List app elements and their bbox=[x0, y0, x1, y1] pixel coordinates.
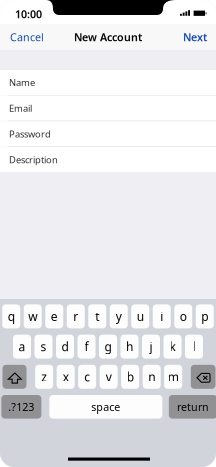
button[interactable]: l bbox=[185, 335, 203, 359]
staticText: k bbox=[169, 339, 175, 354]
button[interactable]: x bbox=[57, 365, 75, 389]
button[interactable]: m bbox=[164, 365, 182, 389]
button[interactable]: k bbox=[163, 335, 181, 359]
button[interactable]: space bbox=[49, 395, 162, 419]
staticText: v bbox=[106, 369, 112, 385]
button[interactable]: u bbox=[131, 304, 149, 328]
staticText: d bbox=[61, 339, 68, 354]
staticText: Cancel bbox=[10, 30, 44, 44]
button[interactable]: j bbox=[142, 335, 160, 359]
staticText: Description bbox=[9, 153, 58, 166]
staticText: e bbox=[51, 308, 58, 324]
button[interactable]: t bbox=[88, 304, 106, 328]
staticText: 10:00 bbox=[15, 7, 42, 21]
staticText: Password bbox=[9, 128, 51, 140]
staticText: n bbox=[148, 369, 155, 385]
staticText: m bbox=[168, 369, 179, 385]
staticText: i bbox=[160, 308, 163, 324]
staticText: b bbox=[127, 369, 134, 385]
button[interactable]: p bbox=[196, 304, 214, 328]
staticText: x bbox=[63, 369, 69, 385]
button[interactable]: q bbox=[2, 304, 20, 328]
button[interactable]: Password bbox=[0, 121, 216, 146]
button[interactable]: Shift bbox=[2, 365, 26, 389]
button[interactable]: c bbox=[78, 365, 96, 389]
staticText: t bbox=[95, 308, 99, 324]
button[interactable]: .?123 bbox=[1, 395, 41, 419]
button[interactable]: v bbox=[100, 365, 118, 389]
staticText: Next bbox=[183, 30, 207, 44]
button[interactable]: i bbox=[153, 304, 171, 328]
button[interactable]: s bbox=[34, 335, 52, 359]
staticText: w bbox=[28, 308, 37, 324]
button[interactable]: Delete bbox=[191, 365, 215, 389]
button[interactable]: Next bbox=[176, 24, 216, 50]
button[interactable]: Cancel bbox=[0, 24, 51, 50]
staticText: h bbox=[126, 339, 133, 354]
button[interactable]: g bbox=[99, 335, 117, 359]
staticText: Name bbox=[9, 76, 35, 89]
staticText: l bbox=[192, 339, 195, 354]
button[interactable]: o bbox=[174, 304, 192, 328]
staticText: u bbox=[137, 308, 144, 324]
staticText: q bbox=[8, 308, 15, 324]
button[interactable]: r bbox=[67, 304, 85, 328]
staticText: a bbox=[18, 339, 25, 354]
staticText: New Account bbox=[74, 30, 142, 44]
button[interactable]: f bbox=[77, 335, 95, 359]
staticText: .?123 bbox=[8, 400, 34, 414]
staticText: o bbox=[180, 308, 187, 324]
staticText: r bbox=[73, 308, 78, 324]
button[interactable]: y bbox=[110, 304, 128, 328]
button[interactable]: a bbox=[13, 335, 31, 359]
button[interactable]: z bbox=[35, 365, 53, 389]
staticText: y bbox=[116, 308, 122, 324]
staticText: Email bbox=[9, 102, 32, 114]
button[interactable]: n bbox=[143, 365, 161, 389]
staticText: space bbox=[91, 400, 120, 414]
staticText: s bbox=[40, 339, 46, 354]
button[interactable]: e bbox=[45, 304, 63, 328]
staticText: g bbox=[104, 339, 111, 354]
button[interactable]: w bbox=[24, 304, 42, 328]
staticText: f bbox=[84, 339, 88, 354]
staticText: z bbox=[41, 369, 47, 385]
button[interactable]: Name bbox=[0, 70, 216, 95]
staticText: c bbox=[84, 369, 90, 385]
staticText: return bbox=[177, 400, 209, 414]
staticText: j bbox=[149, 339, 152, 354]
button[interactable]: b bbox=[121, 365, 139, 389]
button[interactable]: d bbox=[56, 335, 74, 359]
button[interactable]: Description bbox=[0, 147, 216, 172]
button[interactable]: return bbox=[169, 395, 216, 419]
staticText: p bbox=[201, 308, 208, 324]
button[interactable]: Email bbox=[0, 96, 216, 121]
button[interactable]: h bbox=[120, 335, 138, 359]
